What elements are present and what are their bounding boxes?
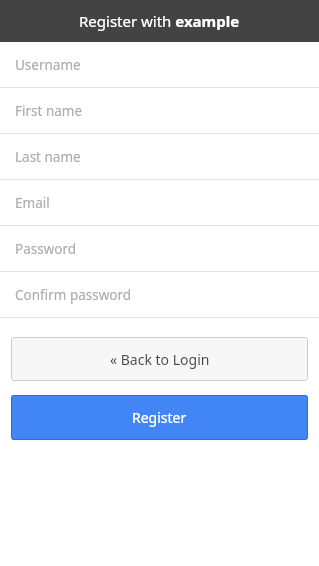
button[interactable]: Last name bbox=[0, 134, 319, 180]
staticText: Username bbox=[15, 56, 81, 74]
button[interactable]: First name bbox=[0, 88, 319, 134]
staticText: « Back to Login bbox=[110, 350, 210, 369]
staticText: First name bbox=[15, 102, 83, 120]
staticText: Email bbox=[15, 194, 50, 212]
button[interactable]: Username bbox=[0, 42, 319, 88]
button[interactable]: Password bbox=[0, 226, 319, 272]
button[interactable]: Email bbox=[0, 180, 319, 226]
button[interactable]: Confirm password bbox=[0, 272, 319, 318]
button[interactable]: « Back to Login bbox=[11, 337, 308, 381]
staticText: Register with example bbox=[79, 11, 240, 31]
staticText: Register bbox=[132, 408, 187, 427]
staticText: Confirm password bbox=[15, 286, 132, 304]
staticText: Password bbox=[15, 240, 77, 258]
staticText: Last name bbox=[15, 148, 81, 166]
button[interactable]: Register bbox=[11, 395, 308, 440]
